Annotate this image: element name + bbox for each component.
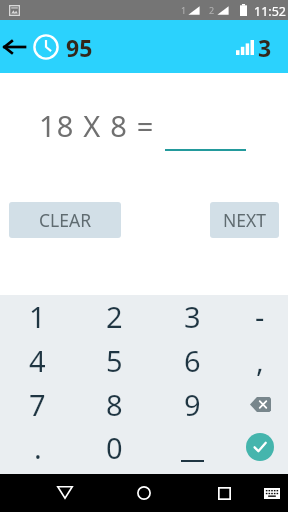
button[interactable]: Home: [126, 474, 162, 512]
button[interactable]: NEXT: [210, 202, 279, 238]
staticText: 18 X 8 =: [39, 106, 155, 145]
button[interactable]: Switch keyboard: [254, 474, 288, 512]
button[interactable]: 9: [154, 382, 231, 426]
button[interactable]: 5: [76, 338, 153, 382]
staticText: -: [255, 297, 265, 336]
staticText: 3: [184, 297, 201, 336]
staticText: 5: [106, 341, 123, 380]
staticText: .: [34, 428, 42, 467]
staticText: 6: [184, 341, 201, 380]
button[interactable]: CLEAR: [9, 202, 121, 238]
button[interactable]: Recent apps: [206, 474, 242, 512]
button[interactable]: 3: [154, 294, 231, 338]
staticText: NEXT: [223, 208, 267, 232]
button[interactable]: ,: [231, 338, 288, 382]
button[interactable]: 8: [76, 382, 153, 426]
staticText: 4: [29, 341, 46, 380]
staticText: 9: [184, 385, 201, 424]
staticText: ,: [256, 341, 264, 380]
staticText: 0: [106, 428, 123, 467]
button[interactable]: Submit: [231, 425, 288, 469]
staticText: 2: [106, 297, 123, 336]
button[interactable]: Back: [0, 32, 27, 62]
button[interactable]: 6: [154, 338, 231, 382]
button[interactable]: -: [231, 294, 288, 338]
button[interactable]: 2: [76, 294, 153, 338]
staticText: 95: [66, 32, 93, 63]
staticText: 8: [106, 385, 123, 424]
staticText: 1: [29, 297, 46, 336]
button[interactable]: 1: [0, 294, 76, 338]
button[interactable]: .: [0, 425, 76, 469]
button[interactable]: 4: [0, 338, 76, 382]
button[interactable]: [154, 425, 231, 469]
button[interactable]: 0: [76, 425, 153, 469]
staticText: 11:52: [254, 3, 286, 20]
staticText: 1: [181, 4, 187, 16]
button[interactable]: Backspace: [231, 382, 288, 426]
staticText: CLEAR: [39, 208, 92, 232]
staticText: 2: [209, 4, 215, 16]
staticText: 7: [29, 385, 46, 424]
staticText: 3: [258, 32, 272, 63]
button[interactable]: Back: [47, 474, 83, 512]
button[interactable]: 7: [0, 382, 76, 426]
